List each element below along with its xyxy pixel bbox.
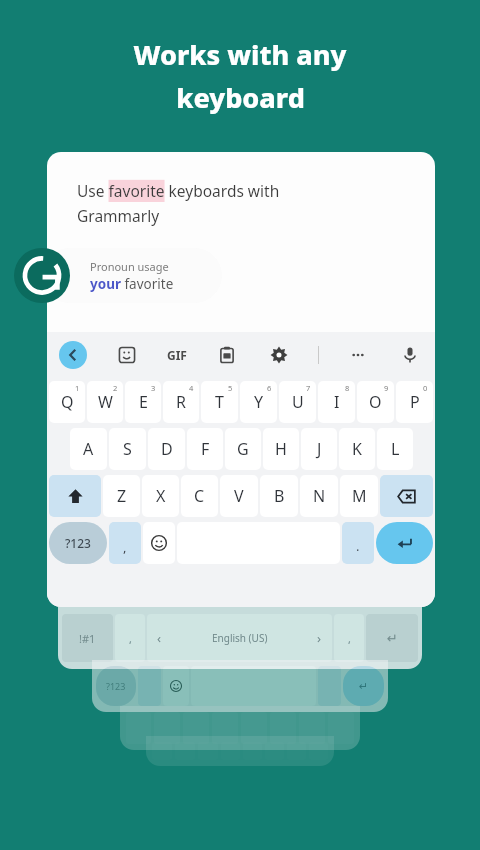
staticText: ?123 bbox=[106, 680, 126, 692]
button[interactable]: H bbox=[263, 428, 299, 470]
button[interactable]: F bbox=[187, 428, 223, 470]
staticText: B bbox=[274, 485, 285, 507]
staticText: V bbox=[234, 485, 244, 507]
button[interactable]: A bbox=[70, 428, 107, 470]
button[interactable]: Shift bbox=[49, 475, 101, 517]
button[interactable]: ?123 bbox=[49, 522, 107, 564]
button[interactable]: Backspace bbox=[380, 475, 433, 517]
staticText: U bbox=[292, 391, 304, 413]
staticText: X bbox=[156, 485, 166, 507]
staticText: D bbox=[161, 438, 173, 460]
staticText: 9 bbox=[384, 383, 389, 393]
staticText: 2 bbox=[113, 383, 118, 393]
staticText: your favorite bbox=[90, 275, 174, 293]
button[interactable]: R bbox=[163, 381, 199, 423]
staticText: Q bbox=[61, 391, 74, 413]
button[interactable]: M bbox=[340, 475, 378, 517]
staticText: P bbox=[410, 391, 420, 413]
staticText: › bbox=[317, 629, 322, 647]
staticText: ?123 bbox=[65, 535, 91, 551]
staticText: ↵ bbox=[359, 680, 369, 693]
staticText: , bbox=[123, 538, 127, 556]
staticText: 7 bbox=[306, 383, 311, 393]
button[interactable]: Voice input bbox=[397, 342, 423, 368]
button[interactable]: K bbox=[339, 428, 375, 470]
staticText: M bbox=[352, 485, 367, 507]
staticText: !#1 bbox=[79, 631, 96, 646]
button[interactable]: Y bbox=[240, 381, 277, 423]
button[interactable]: G bbox=[225, 428, 261, 470]
staticText: Pronoun usage bbox=[90, 259, 169, 274]
staticText: I bbox=[334, 391, 340, 413]
staticText: E bbox=[139, 391, 148, 413]
button[interactable]: Pronoun usage bbox=[14, 248, 194, 303]
button[interactable]: More options bbox=[345, 342, 371, 368]
staticText: T bbox=[215, 391, 224, 413]
button[interactable]: I bbox=[318, 381, 355, 423]
staticText: Y bbox=[254, 391, 264, 413]
button[interactable]: P bbox=[396, 381, 433, 423]
staticText: A bbox=[83, 438, 94, 460]
button[interactable]: Period bbox=[342, 522, 374, 564]
button[interactable]: V bbox=[220, 475, 258, 517]
button[interactable]: S bbox=[109, 428, 146, 470]
button[interactable]: Q bbox=[49, 381, 85, 423]
staticText: S bbox=[123, 438, 132, 460]
staticText: 0 bbox=[423, 383, 428, 393]
staticText: H bbox=[275, 438, 287, 460]
staticText: J bbox=[317, 438, 322, 460]
staticText: ‹ bbox=[157, 629, 162, 647]
staticText: 8 bbox=[345, 383, 350, 393]
button[interactable]: Clipboard bbox=[214, 342, 240, 368]
button[interactable]: O bbox=[357, 381, 394, 423]
button[interactable]: Settings bbox=[266, 342, 292, 368]
staticText: ↵ bbox=[387, 631, 398, 646]
staticText: Z bbox=[117, 485, 127, 507]
button[interactable]: Emoji bbox=[143, 522, 175, 564]
button[interactable]: GIF bbox=[167, 347, 187, 363]
button[interactable]: D bbox=[148, 428, 185, 470]
button[interactable]: Stickers bbox=[114, 342, 140, 368]
staticText: Works with any bbox=[133, 36, 347, 73]
staticText: 3 bbox=[151, 383, 156, 393]
staticText: 6 bbox=[267, 383, 272, 393]
button[interactable]: X bbox=[142, 475, 179, 517]
button[interactable]: C bbox=[181, 475, 218, 517]
button[interactable]: Back bbox=[59, 341, 87, 369]
staticText: N bbox=[313, 485, 326, 507]
staticText: English (US) bbox=[212, 631, 268, 645]
button[interactable]: J bbox=[301, 428, 337, 470]
staticText: C bbox=[194, 485, 205, 507]
button[interactable]: Comma bbox=[109, 522, 141, 564]
other: Grammarly bbox=[14, 248, 70, 303]
staticText: , bbox=[348, 631, 351, 646]
button[interactable]: W bbox=[87, 381, 123, 423]
staticText: 1 bbox=[75, 383, 80, 393]
staticText: 5 bbox=[228, 383, 233, 393]
staticText: W bbox=[98, 391, 113, 413]
button[interactable]: L bbox=[377, 428, 413, 470]
staticText: keyboard bbox=[176, 79, 305, 116]
staticText: . bbox=[356, 537, 360, 555]
button[interactable]: E bbox=[125, 381, 161, 423]
button[interactable]: T bbox=[201, 381, 238, 423]
staticText: L bbox=[391, 438, 400, 460]
button[interactable]: N bbox=[300, 475, 338, 517]
staticText: G bbox=[237, 438, 249, 460]
staticText: K bbox=[352, 438, 362, 460]
staticText: Use favorite keyboards with Grammarly bbox=[77, 180, 280, 227]
button[interactable]: Enter bbox=[376, 522, 433, 564]
button[interactable]: Z bbox=[103, 475, 140, 517]
staticText: , bbox=[129, 631, 132, 646]
staticText: GIF bbox=[167, 347, 187, 363]
staticText: R bbox=[176, 391, 186, 413]
button[interactable]: B bbox=[260, 475, 298, 517]
staticText: F bbox=[201, 438, 210, 460]
button[interactable]: U bbox=[279, 381, 316, 423]
staticText: 4 bbox=[189, 383, 194, 393]
staticText: O bbox=[369, 391, 382, 413]
